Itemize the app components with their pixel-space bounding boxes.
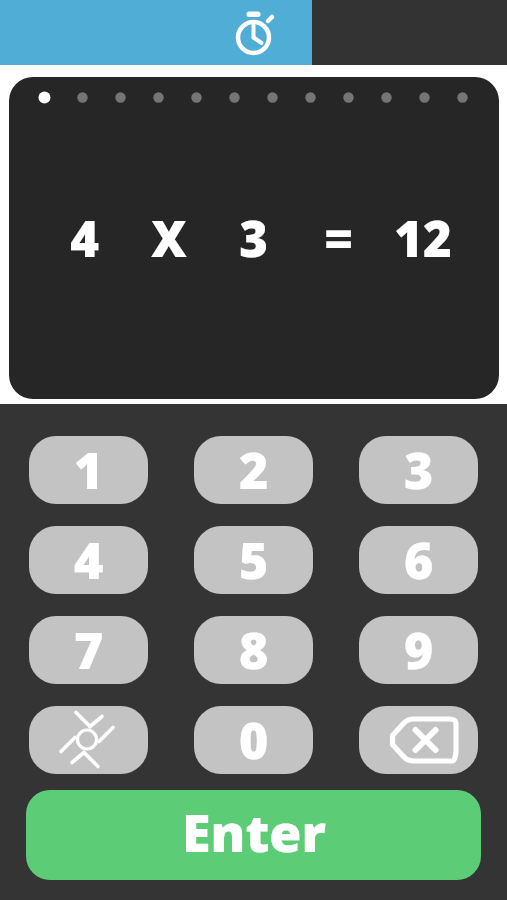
button[interactable]: 9 bbox=[359, 616, 478, 684]
staticText: 6 bbox=[404, 526, 434, 594]
staticText: 3 bbox=[404, 436, 434, 504]
button[interactable]: Enter bbox=[26, 790, 481, 880]
button[interactable]: 8 bbox=[194, 616, 313, 684]
button[interactable]: 0 bbox=[194, 706, 313, 774]
button[interactable]: 7 bbox=[29, 616, 148, 684]
staticText: 9 bbox=[404, 616, 434, 684]
staticText: 4 bbox=[70, 205, 99, 272]
button[interactable]: 6 bbox=[359, 526, 478, 594]
staticText: = bbox=[324, 205, 353, 272]
staticText: 1 bbox=[74, 436, 104, 504]
staticText: 2 bbox=[239, 436, 269, 504]
staticText: 12 bbox=[394, 205, 452, 272]
button[interactable]: 5 bbox=[194, 526, 313, 594]
button[interactable]: 1 bbox=[29, 436, 148, 504]
staticText: 4 bbox=[74, 526, 104, 594]
button[interactable]: 4 bbox=[29, 526, 148, 594]
button[interactable]: 3 bbox=[359, 436, 478, 504]
button[interactable] bbox=[29, 706, 148, 774]
staticText: X bbox=[151, 205, 187, 272]
button[interactable]: 2 bbox=[194, 436, 313, 504]
staticText: 7 bbox=[74, 616, 104, 684]
staticText: 5 bbox=[239, 526, 269, 594]
staticText: 8 bbox=[239, 616, 269, 684]
staticText: 0 bbox=[239, 706, 269, 774]
button[interactable] bbox=[359, 706, 478, 774]
staticText: 3 bbox=[239, 205, 268, 272]
staticText: Enter bbox=[182, 796, 326, 867]
